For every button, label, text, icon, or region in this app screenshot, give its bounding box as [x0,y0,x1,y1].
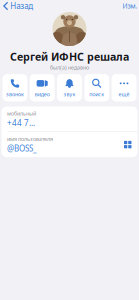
staticText: ещё [119,91,130,98]
button[interactable]: Изм. [122,0,139,12]
button[interactable]: видео [30,74,55,101]
staticText: видео [35,91,50,98]
button[interactable]: имя пользователя [1,132,137,157]
staticText: @BOSS_ [7,143,37,154]
button[interactable]: поиск [84,74,109,101]
staticText: был(а) недавно [50,64,89,71]
staticText: звонок [6,91,24,98]
button[interactable]: Назад [0,0,33,13]
button[interactable]: ещё [112,74,136,101]
staticText: звук [63,91,75,98]
staticText: мобильный [7,110,36,117]
staticText: поиск [89,91,104,98]
staticText: +44 7... [7,117,35,128]
staticText: Сергей ИФНС решала [10,49,129,64]
button[interactable]: звонок [2,74,27,101]
button[interactable]: звук [57,74,82,101]
staticText: Назад [10,1,33,11]
staticText: Изм. [122,2,137,10]
button[interactable]: мобильный [1,106,137,131]
staticText: имя пользователя [7,135,53,142]
